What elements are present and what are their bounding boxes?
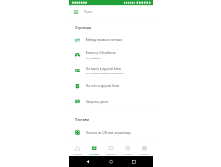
staticText: История (123, 153, 133, 156)
button[interactable]: Оплата по QR или штрихкоду (69, 125, 153, 140)
button[interactable]: Клиенту Сбербанка (69, 48, 153, 63)
button[interactable]: Главное (69, 140, 86, 156)
staticText: Главное (73, 153, 82, 156)
staticText: Каталог (140, 153, 149, 156)
staticText: По телефону (86, 56, 101, 59)
button[interactable]: Между своими счетами (69, 32, 153, 48)
staticText: Запросы денег (86, 99, 109, 104)
staticText: Поиск (84, 10, 92, 14)
button[interactable]: Каталог (136, 140, 153, 156)
button[interactable]: Back (84, 157, 92, 166)
button[interactable]: На счёт в другой банк (69, 78, 153, 94)
button[interactable]: Menu (71, 7, 81, 16)
staticText: Оплата по QR или штрихкоду (86, 130, 131, 135)
staticText: Платежи (75, 117, 89, 121)
button[interactable]: Диалоги (103, 140, 119, 156)
staticText: Клиенту Сбербанка (86, 51, 116, 55)
button[interactable]: Запросы денег (69, 94, 153, 109)
staticText: На счёт в другой банк (86, 84, 119, 88)
staticText: На карту в другой банк (86, 66, 121, 71)
button[interactable]: Recent apps (130, 157, 138, 166)
staticText: Между своими счетами (86, 38, 122, 42)
button[interactable]: Платежи (86, 140, 103, 156)
button[interactable]: Home (107, 157, 115, 166)
staticText: Платежи (89, 153, 99, 156)
staticText: По номеру телефона или карты (86, 72, 124, 75)
button[interactable]: На карту в другой банк (69, 63, 153, 78)
staticText: Переводы (75, 26, 91, 30)
staticText: Диалоги (106, 153, 116, 156)
button[interactable]: История (119, 140, 136, 156)
